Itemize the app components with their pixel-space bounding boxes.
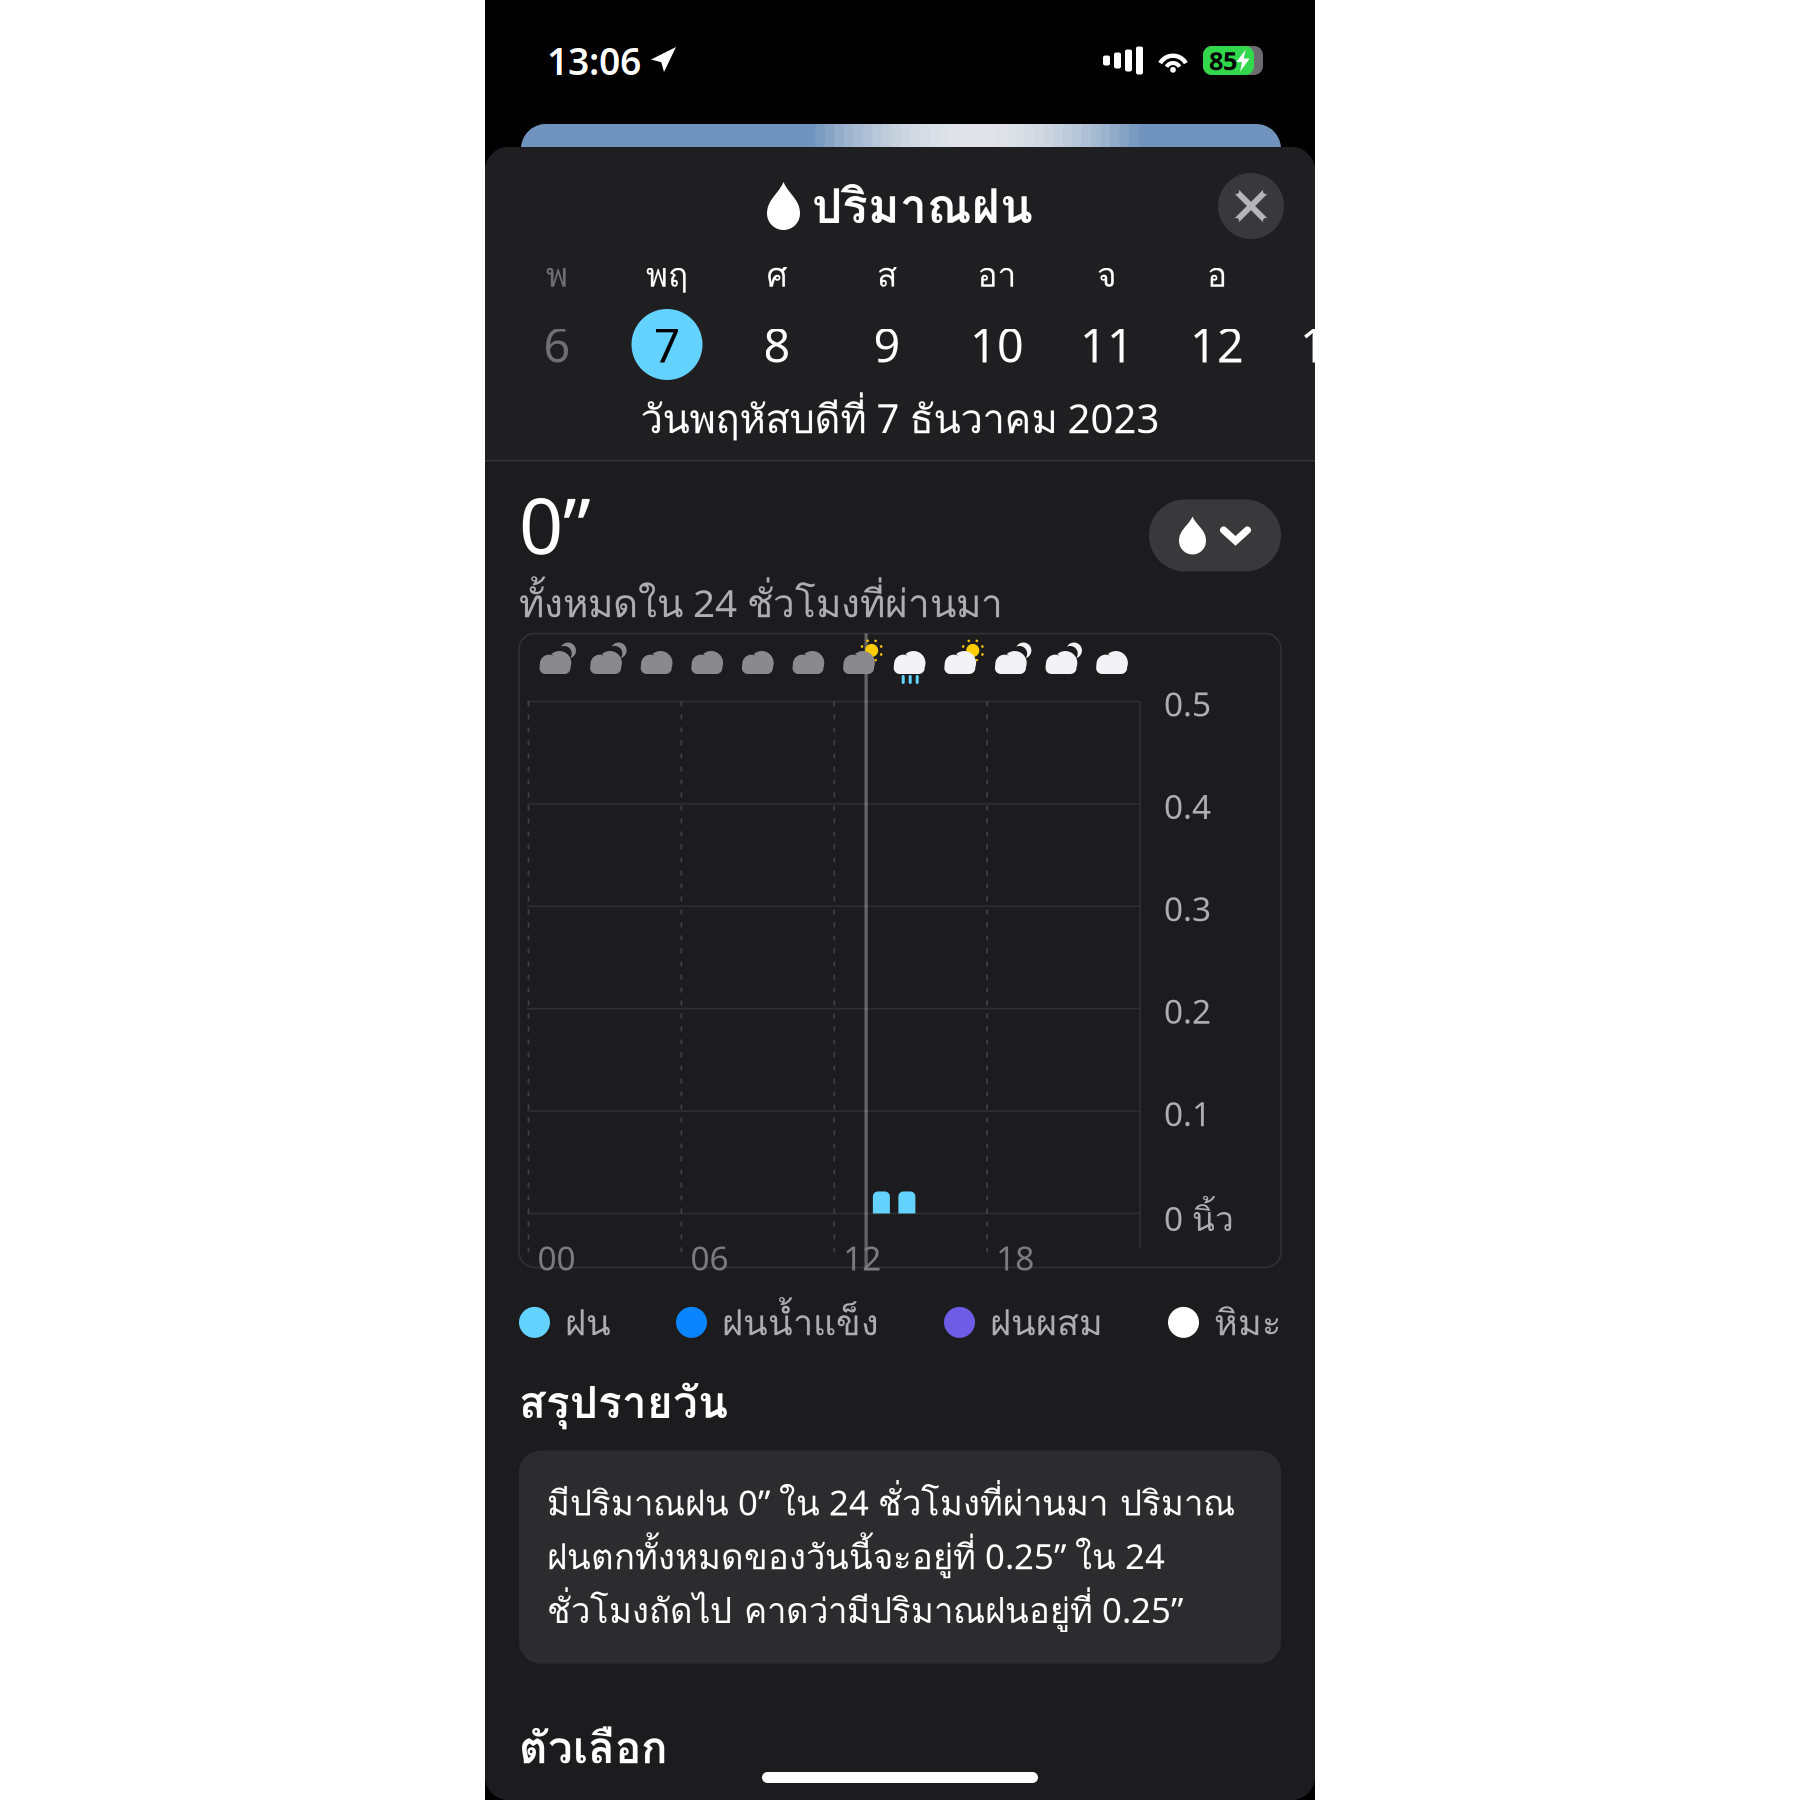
staticText: หิมะ [1214, 1294, 1281, 1350]
staticText: อ [1207, 249, 1227, 301]
button[interactable]: Change metric [1149, 499, 1281, 571]
staticText: 0.2 [1164, 989, 1211, 1033]
staticText: 13 [1300, 313, 1354, 375]
button[interactable]: อ [1162, 257, 1272, 380]
staticText: 7 [653, 313, 680, 375]
staticText: 0.4 [1164, 784, 1211, 828]
staticText: 0” [519, 472, 591, 575]
button[interactable]: ศ [722, 257, 832, 380]
staticText: ฝน [565, 1294, 611, 1350]
staticText: วันพฤหัสบดีที่ 7 ธันวาคม 2023 [640, 388, 1159, 450]
staticText: ฝนผสม [990, 1294, 1103, 1350]
staticText: 06 [690, 1235, 728, 1280]
staticText: 85 [1209, 44, 1237, 77]
staticText: ปริมาณฝน [812, 169, 1033, 243]
staticText: 0.3 [1164, 886, 1211, 931]
staticText: 00 [537, 1235, 575, 1280]
staticText: พฤ [646, 249, 688, 301]
staticText: 18 [996, 1235, 1034, 1280]
staticText: สรุปรายวัน [519, 1368, 728, 1436]
staticText: 12 [1190, 313, 1244, 375]
staticText: 0.1 [1164, 1091, 1211, 1135]
staticText: ตัวเลือก [519, 1714, 668, 1782]
staticText: อา [977, 249, 1016, 301]
button[interactable]: พฤ [612, 257, 722, 380]
staticText: 9 [873, 313, 900, 375]
staticText: จ [1097, 249, 1117, 301]
button[interactable]: จ [1052, 257, 1162, 380]
staticText: ทั้งหมดใน 24 ชั่วโมงที่ผ่านมา [519, 573, 1003, 633]
staticText: 0.5 [1164, 681, 1211, 726]
staticText: 10 [970, 313, 1024, 375]
button[interactable]: ส [832, 257, 942, 380]
staticText: 11 [1080, 313, 1134, 375]
button[interactable]: พ [502, 257, 612, 380]
staticText: ฝนน้ำแข็ง [722, 1294, 879, 1350]
button[interactable]: อา [942, 257, 1052, 380]
staticText: 12 [843, 1235, 881, 1280]
button[interactable]: Close [1218, 173, 1284, 239]
staticText: ศ [766, 249, 787, 301]
staticText: 0 นิ้ว [1164, 1193, 1234, 1245]
staticText: มีปริมาณฝน 0” ใน 24 ชั่วโมงที่ผ่านมา ปริ… [547, 1476, 1235, 1638]
button[interactable]: พ [1272, 257, 1382, 380]
staticText: 13:06 [547, 36, 641, 85]
staticText: ส [877, 249, 897, 301]
staticText: 6 [543, 313, 570, 375]
staticText: พ [546, 249, 568, 301]
staticText: 8 [763, 313, 790, 375]
